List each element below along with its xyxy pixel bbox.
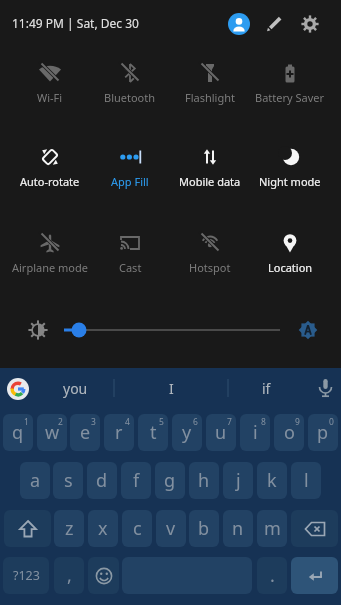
button[interactable]: i — [240, 414, 270, 451]
button[interactable]: p — [308, 414, 338, 451]
staticText: Flashlight — [185, 90, 235, 105]
button[interactable]: Bluetooth — [88, 61, 172, 105]
staticText: I — [169, 379, 174, 398]
staticText: Battery Saver — [255, 90, 325, 105]
staticText: 9 — [295, 416, 300, 428]
button[interactable]: j — [223, 462, 253, 499]
button[interactable]: u — [206, 414, 236, 451]
button[interactable]: w — [37, 414, 67, 451]
button[interactable]: I — [114, 368, 228, 408]
button[interactable]: e — [70, 414, 100, 451]
button[interactable]: Flashlight — [168, 61, 252, 105]
staticText: 0 — [329, 416, 334, 428]
staticText: you — [63, 379, 88, 398]
button[interactable]: n — [223, 510, 253, 547]
button[interactable]: Battery Saver — [248, 61, 332, 105]
button[interactable]: v — [156, 510, 186, 547]
button[interactable]: you — [36, 368, 114, 408]
staticText: j — [236, 468, 241, 493]
staticText: Airplane mode — [12, 260, 88, 275]
button[interactable] — [4, 510, 51, 547]
staticText: v — [166, 516, 176, 541]
button[interactable] — [88, 557, 119, 594]
staticText: Hotspot — [189, 260, 231, 275]
button[interactable]: , — [54, 557, 84, 594]
staticText: . — [270, 563, 275, 588]
staticText: b — [198, 516, 210, 541]
button[interactable]: ?123 — [3, 557, 49, 594]
button[interactable]: . — [257, 557, 287, 594]
staticText: f — [133, 468, 140, 493]
button[interactable]: if — [228, 368, 305, 408]
staticText: z — [65, 516, 74, 541]
staticText: 11:49 PM | Sat, Dec 30 — [12, 15, 139, 31]
staticText: x — [98, 516, 108, 541]
button[interactable]: App Fill — [88, 145, 172, 189]
button[interactable]: k — [257, 462, 287, 499]
button[interactable]: Hotspot — [168, 231, 252, 275]
button[interactable]: b — [189, 510, 219, 547]
staticText: c — [133, 516, 142, 541]
button[interactable] — [227, 12, 251, 36]
button[interactable] — [291, 557, 338, 594]
staticText: k — [267, 468, 277, 493]
staticText: t — [150, 420, 157, 445]
button[interactable]: t — [138, 414, 168, 451]
button[interactable]: d — [87, 462, 117, 499]
staticText: 6 — [193, 416, 198, 428]
staticText: 3 — [91, 416, 96, 428]
staticText: m — [264, 516, 281, 541]
staticText: w — [45, 420, 60, 445]
staticText: u — [215, 420, 227, 445]
staticText: Auto-rotate — [20, 174, 80, 189]
staticText: ?123 — [13, 567, 40, 584]
staticText: , — [67, 563, 72, 588]
button[interactable]: Wi-Fi — [8, 61, 92, 105]
button[interactable]: z — [54, 510, 84, 547]
staticText: 7 — [227, 416, 232, 428]
button[interactable]: Night mode — [248, 145, 332, 189]
button[interactable] — [313, 376, 337, 400]
button[interactable]: h — [189, 462, 219, 499]
button[interactable]: m — [257, 510, 287, 547]
button[interactable]: q — [3, 414, 33, 451]
button[interactable] — [298, 12, 322, 36]
staticText: App Fill — [111, 174, 149, 189]
staticText: 1 — [24, 416, 29, 428]
staticText: 8 — [261, 416, 266, 428]
button[interactable]: r — [104, 414, 134, 451]
staticText: Mobile data — [179, 174, 241, 189]
button[interactable]: Auto-rotate — [8, 145, 92, 189]
staticText: 2 — [58, 416, 63, 428]
button[interactable]: y — [172, 414, 202, 451]
button[interactable]: g — [155, 462, 185, 499]
button[interactable] — [262, 12, 286, 36]
button[interactable]: c — [122, 510, 152, 547]
staticText: p — [317, 420, 329, 445]
staticText: a — [30, 468, 41, 493]
button[interactable]: Location — [248, 231, 332, 275]
button[interactable]: s — [53, 462, 83, 499]
staticText: Bluetooth — [104, 90, 156, 105]
button[interactable]: Mobile data — [168, 145, 252, 189]
button[interactable]: Cast — [88, 231, 172, 275]
button[interactable]: x — [88, 510, 118, 547]
button[interactable] — [291, 510, 338, 547]
staticText: o — [284, 420, 295, 445]
staticText: g — [164, 468, 176, 493]
button[interactable]: f — [121, 462, 151, 499]
staticText: q — [12, 420, 24, 445]
button[interactable]: Airplane mode — [8, 231, 92, 275]
staticText: if — [262, 379, 271, 398]
button[interactable]: l — [291, 462, 321, 499]
staticText: 4 — [125, 416, 130, 428]
staticText: Location — [268, 260, 313, 275]
button[interactable] — [6, 377, 30, 401]
staticText: Night mode — [259, 174, 321, 189]
staticText: s — [64, 468, 73, 493]
button[interactable]: o — [274, 414, 304, 451]
button[interactable] — [0, 310, 341, 350]
button[interactable]: a — [20, 462, 50, 499]
staticText: d — [96, 468, 108, 493]
